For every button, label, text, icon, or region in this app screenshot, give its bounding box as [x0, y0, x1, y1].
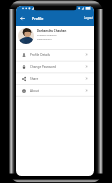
staticText: Share [30, 77, 39, 81]
staticText: About [30, 89, 39, 93]
staticText: Profile Details [30, 53, 51, 57]
staticText: Change Password [30, 65, 56, 69]
button[interactable]: Change Password [16, 61, 94, 72]
button[interactable]: About [16, 85, 94, 96]
staticText: Software Engineer [37, 34, 57, 37]
staticText: Development [37, 38, 52, 41]
staticText: Profile [32, 16, 44, 21]
button[interactable]: Back [18, 10, 27, 26]
button[interactable]: Logout [80, 10, 94, 26]
staticText: Logout [84, 16, 93, 20]
button[interactable]: Profile Details [16, 49, 94, 60]
staticText: Darbansihu Chauhan [37, 29, 67, 33]
button[interactable]: Share [16, 73, 94, 84]
